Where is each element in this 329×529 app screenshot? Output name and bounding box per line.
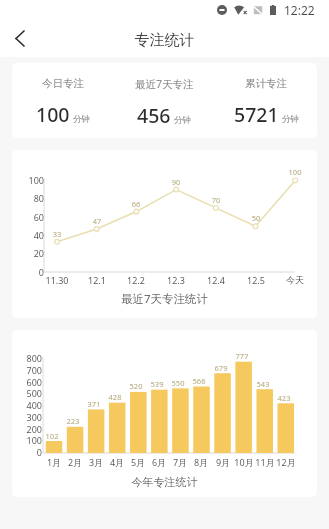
staticText: 33 [45,229,69,239]
staticText: 600 [16,376,42,388]
staticText: 566 [187,376,211,386]
staticText: 11月 [251,456,279,468]
staticText: 12.4 [198,274,234,286]
staticText: 今日专注 [42,77,84,90]
staticText: 70 [204,195,228,205]
staticText: 最近7天专注 [135,77,194,91]
staticText: 200 [16,423,42,435]
staticText: 3月 [82,456,110,468]
staticText: 223 [61,416,85,426]
button[interactable]: 最近7天专注 [113,63,215,138]
staticText: 520 [124,381,148,391]
staticText: 0 [16,446,42,458]
staticText: 累计专注 [245,77,287,90]
staticText: 5月 [124,456,152,468]
staticText: 0 [16,266,44,278]
staticText: 679 [209,363,233,373]
staticText: 2月 [61,456,89,468]
staticText: 500 [16,387,42,399]
staticText: 100 [16,434,42,446]
staticText: 1月 [40,456,68,468]
staticText: 20 [16,247,44,259]
staticText: 428 [103,392,127,402]
staticText: 10月 [230,456,258,468]
staticText: 100 [36,101,70,128]
staticText: 800 [16,352,42,364]
staticText: 今天 [277,274,313,285]
staticText: 102 [40,431,64,441]
staticText: 12.2 [118,274,154,286]
staticText: 分钟 [174,115,191,126]
staticText: 5721 [234,101,279,128]
staticText: 12:22 [284,2,315,18]
staticText: 777 [230,351,254,361]
staticText: 543 [251,379,275,389]
staticText: 300 [16,411,42,423]
staticText: 100 [16,174,44,186]
staticText: 90 [164,177,188,187]
staticText: 100 [283,167,307,177]
staticText: 专注统计 [0,31,329,50]
button[interactable]: Back [5,23,35,53]
staticText: 8月 [187,456,215,468]
staticText: 4月 [103,456,131,468]
staticText: 456 [137,102,171,129]
staticText: 分钟 [73,114,90,125]
staticText: 700 [16,364,42,376]
staticText: 60 [16,211,44,223]
staticText: 40 [16,229,44,241]
staticText: 400 [16,399,42,411]
staticText: 6月 [145,456,173,468]
staticText: 分钟 [282,114,299,125]
staticText: 550 [166,378,190,388]
staticText: 66 [124,199,148,209]
staticText: 最近7天专注统计 [12,291,317,307]
staticText: 80 [16,192,44,204]
staticText: 12.3 [158,274,194,286]
staticText: 539 [145,379,169,389]
button[interactable]: 累计专注 [215,63,317,138]
staticText: 50 [244,213,268,223]
button[interactable]: 今日专注 [12,63,113,138]
staticText: 371 [82,399,106,409]
staticText: 今年专注统计 [12,475,317,489]
staticText: 7月 [166,456,194,468]
staticText: 423 [272,393,296,403]
staticText: 47 [85,216,109,226]
staticText: 12.1 [79,274,115,286]
staticText: 11.30 [39,274,75,286]
staticText: 12.5 [238,274,274,286]
staticText: 12月 [272,456,300,468]
staticText: 9月 [209,456,237,468]
